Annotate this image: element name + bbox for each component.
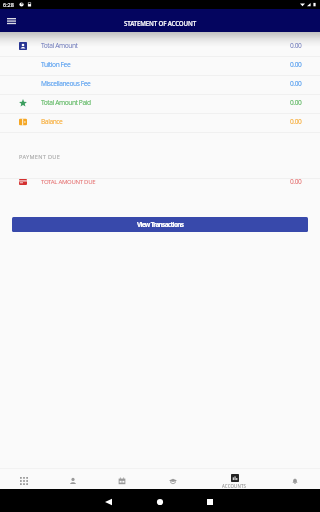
button[interactable]: Calendar <box>97 469 147 489</box>
staticText: Balance <box>41 117 63 126</box>
button[interactable]: Miscellaneous Fee <box>0 75 320 94</box>
staticText: View Transactions <box>137 220 184 229</box>
staticText: 0.00 <box>290 177 302 186</box>
staticText: 0.00 <box>290 79 302 88</box>
button[interactable]: Balance <box>0 113 320 132</box>
button[interactable]: Notifications <box>270 469 320 489</box>
button[interactable]: Academics <box>147 469 198 489</box>
button[interactable]: Tuition Fee <box>0 56 320 75</box>
staticText: Tuition Fee <box>41 60 71 69</box>
button[interactable]: Menu <box>0 10 22 32</box>
staticText: 6:28 <box>3 1 14 8</box>
staticText: 0.00 <box>290 117 302 126</box>
staticText: STATEMENT OF ACCOUNT <box>124 19 196 27</box>
staticText: 0.00 <box>290 98 302 107</box>
button[interactable]: Apps <box>0 469 48 489</box>
staticText: Total Amount Paid <box>41 98 91 107</box>
button[interactable]: Total Amount Paid <box>0 94 320 113</box>
button[interactable]: Total Amount <box>0 37 320 56</box>
staticText: PAYMENT DUE <box>19 153 61 161</box>
button[interactable]: ACCOUNTS <box>198 469 270 489</box>
button[interactable]: TOTAL AMOUNT DUE <box>0 173 320 192</box>
staticText: Miscellaneous Fee <box>41 79 91 88</box>
button[interactable]: Profile <box>48 469 97 489</box>
staticText: TOTAL AMOUNT DUE <box>41 178 96 186</box>
staticText: ACCOUNTS <box>222 483 247 489</box>
staticText: 0.00 <box>290 41 302 50</box>
button[interactable]: View Transactions <box>12 217 308 232</box>
staticText: 0.00 <box>290 60 302 69</box>
staticText: Total Amount <box>41 41 78 50</box>
